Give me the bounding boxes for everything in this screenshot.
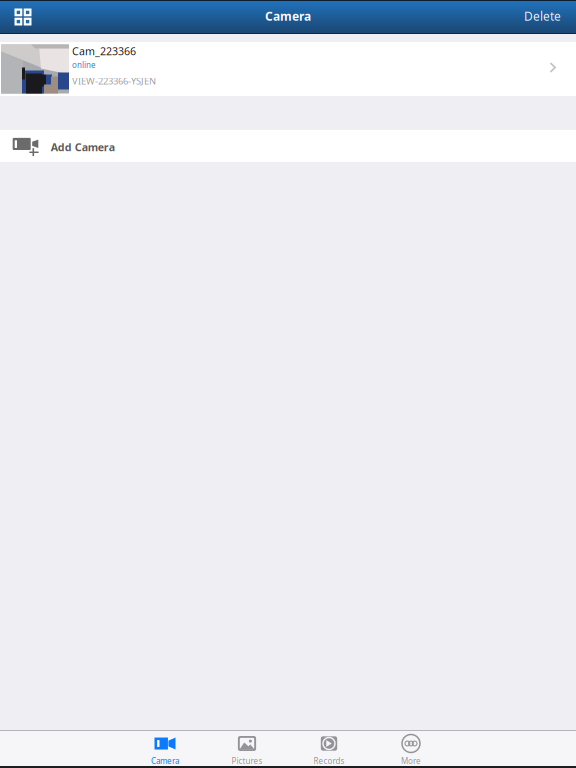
- button[interactable]: Camera: [124, 731, 206, 766]
- button[interactable]: Delete: [524, 0, 576, 34]
- staticText: Camera: [265, 8, 311, 24]
- staticText: Cam_223366: [72, 44, 136, 58]
- button[interactable]: Add Camera: [0, 130, 576, 162]
- staticText: Records: [313, 756, 344, 766]
- staticText: online: [72, 60, 96, 70]
- button[interactable]: Records: [288, 731, 370, 766]
- staticText: Add Camera: [51, 140, 115, 154]
- button[interactable]: More: [370, 731, 452, 766]
- button[interactable]: Pictures: [206, 731, 288, 766]
- button[interactable]: Cam_223366: [0, 42, 576, 96]
- staticText: VIEW-223366-YSJEN: [72, 75, 156, 87]
- button[interactable]: Grid layout: [0, 0, 45, 34]
- staticText: More: [401, 756, 421, 766]
- staticText: Pictures: [231, 756, 262, 766]
- staticText: Delete: [524, 8, 561, 24]
- staticText: Camera: [151, 756, 179, 766]
